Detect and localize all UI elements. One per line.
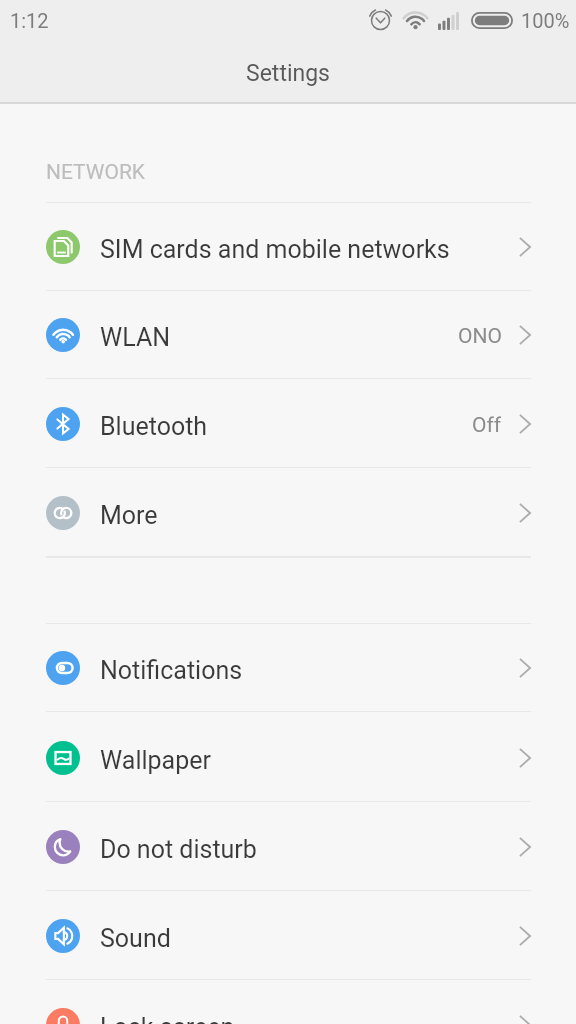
button[interactable]: Wallpaper: [0, 713, 576, 802]
button[interactable]: More: [0, 468, 576, 557]
staticText: Lock screen: [100, 1013, 235, 1024]
button[interactable]: WLAN: [0, 290, 576, 379]
staticText: Bluetooth: [100, 412, 208, 441]
staticText: SIM cards and mobile networks: [100, 235, 450, 264]
staticText: 100%: [521, 9, 570, 32]
staticText: Notifications: [100, 656, 243, 685]
staticText: More: [100, 501, 158, 530]
staticText: Settings: [246, 60, 330, 87]
staticText: Do not disturb: [100, 835, 257, 864]
button[interactable]: Lock screen: [0, 980, 576, 1024]
staticText: WLAN: [100, 323, 171, 352]
staticText: Sound: [100, 924, 171, 953]
staticText: NETWORK: [46, 160, 146, 185]
button[interactable]: Notifications: [0, 623, 576, 712]
staticText: ONO: [458, 324, 502, 349]
button[interactable]: Bluetooth: [0, 379, 576, 468]
button[interactable]: Sound: [0, 891, 576, 980]
staticText: Off: [472, 413, 502, 438]
staticText: 1:12: [10, 9, 49, 32]
staticText: Wallpaper: [100, 746, 211, 775]
button[interactable]: Do not disturb: [0, 802, 576, 891]
button[interactable]: SIM cards and mobile networks: [0, 202, 576, 291]
